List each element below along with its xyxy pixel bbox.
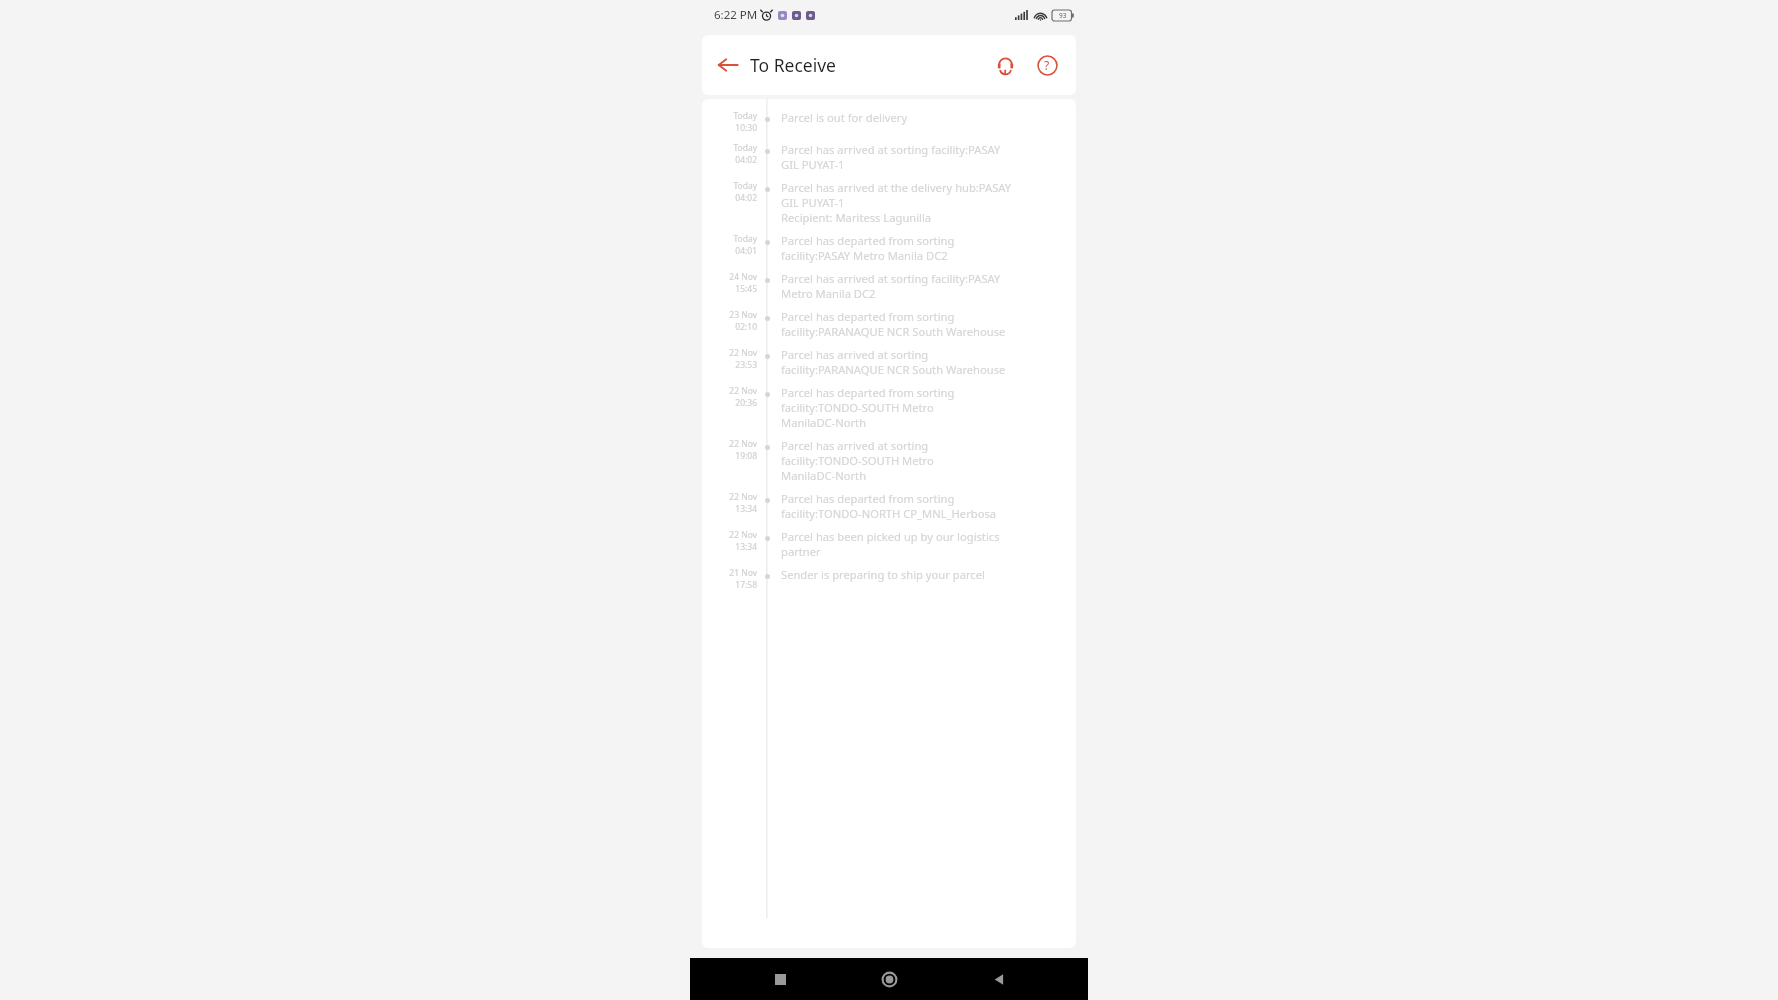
staticText: GIL PUYAT-1: [781, 157, 845, 172]
staticText: facility:PASAY Metro Manila DC2: [781, 248, 948, 263]
staticText: Parcel is out for delivery: [781, 110, 908, 125]
button[interactable]: Back: [708, 45, 748, 85]
staticText: 23 Nov: [729, 309, 757, 321]
staticText: facility:TONDO-SOUTH Metro: [781, 453, 934, 468]
staticText: 22 Nov: [729, 385, 757, 397]
staticText: Recipient: Maritess Lagunilla: [781, 210, 932, 225]
staticText: Parcel has arrived at sorting: [781, 438, 929, 453]
staticText: facility:TONDO-SOUTH Metro: [781, 400, 934, 415]
staticText: 15:45: [735, 283, 757, 295]
staticText: Today: [733, 180, 757, 192]
staticText: 22 Nov: [729, 438, 757, 450]
staticText: Parcel has arrived at sorting facility:P…: [781, 142, 1001, 157]
staticText: Parcel has arrived at sorting facility:P…: [781, 271, 1001, 286]
button[interactable]: Customer support: [984, 44, 1026, 86]
staticText: 10:30: [735, 122, 757, 134]
staticText: To Receive: [750, 53, 836, 77]
staticText: 21 Nov: [729, 567, 757, 579]
staticText: Today: [733, 142, 757, 154]
staticText: 22 Nov: [729, 347, 757, 359]
staticText: 23:53: [735, 359, 757, 371]
staticText: 17:58: [735, 579, 757, 591]
staticText: Parcel has departed from sorting: [781, 233, 955, 248]
staticText: 6:22 PM: [714, 7, 758, 23]
staticText: 04:01: [735, 245, 757, 257]
staticText: Parcel has departed from sorting: [781, 309, 955, 324]
staticText: 02:10: [735, 321, 757, 333]
staticText: Parcel has departed from sorting: [781, 385, 955, 400]
button[interactable]: Help: [1026, 44, 1068, 86]
button[interactable]: Back: [979, 959, 1019, 999]
staticText: facility:TONDO-NORTH CP_MNL_Herbosa: [781, 506, 997, 521]
staticText: 20:36: [735, 397, 757, 409]
staticText: facility:PARANAQUE NCR South Warehouse: [781, 362, 1006, 377]
staticText: Sender is preparing to ship your parcel: [781, 567, 985, 582]
staticText: 19:08: [735, 450, 757, 462]
staticText: facility:PARANAQUE NCR South Warehouse: [781, 324, 1006, 339]
staticText: Parcel has departed from sorting: [781, 491, 955, 506]
staticText: Parcel has arrived at the delivery hub:P…: [781, 180, 1012, 195]
staticText: 13:34: [735, 541, 757, 553]
staticText: 24 Nov: [729, 271, 757, 283]
staticText: 22 Nov: [729, 529, 757, 541]
staticText: Today: [733, 233, 757, 245]
staticText: ManilaDC-North: [781, 468, 867, 483]
staticText: 04:02: [735, 154, 757, 166]
button[interactable]: Home: [869, 959, 909, 999]
staticText: Parcel has arrived at sorting: [781, 347, 929, 362]
staticText: Today: [733, 110, 757, 122]
staticText: 22 Nov: [729, 491, 757, 503]
staticText: ?: [1044, 57, 1050, 73]
staticText: GIL PUYAT-1: [781, 195, 845, 210]
staticText: ManilaDC-North: [781, 415, 867, 430]
staticText: partner: [781, 544, 821, 559]
staticText: Parcel has been picked up by our logisti…: [781, 529, 1000, 544]
staticText: 04:02: [735, 192, 757, 204]
button[interactable]: Recents: [760, 959, 800, 999]
staticText: Metro Manila DC2: [781, 286, 876, 301]
staticText: 93: [1059, 11, 1067, 20]
staticText: 13:34: [735, 503, 757, 515]
